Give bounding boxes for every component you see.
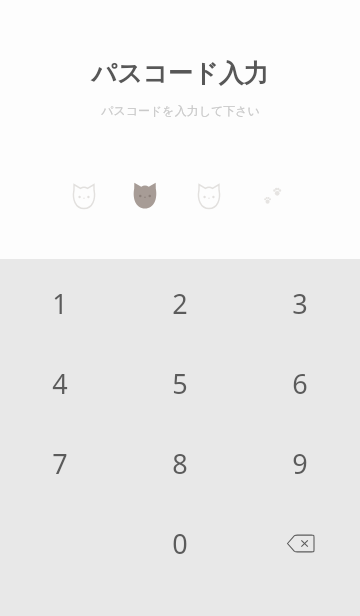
button[interactable]: 0 xyxy=(120,503,240,583)
button[interactable]: 3 xyxy=(240,263,360,343)
staticText: 0 xyxy=(172,525,188,562)
staticText: 5 xyxy=(172,365,188,402)
button[interactable]: 1 xyxy=(0,263,120,343)
button[interactable]: 4 xyxy=(0,343,120,423)
staticText: 3 xyxy=(292,285,308,322)
button[interactable]: 5 xyxy=(120,343,240,423)
button[interactable]: 9 xyxy=(240,423,360,503)
button[interactable]: Backspace xyxy=(240,503,360,583)
button[interactable]: 2 xyxy=(120,263,240,343)
button[interactable]: 7 xyxy=(0,423,120,503)
staticText: 6 xyxy=(292,365,308,402)
staticText: パスコードを入力して下さい xyxy=(101,103,260,118)
staticText: 8 xyxy=(172,445,188,482)
staticText: 2 xyxy=(172,285,188,322)
staticText: 1 xyxy=(52,285,68,322)
staticText: 9 xyxy=(292,445,308,482)
staticText: 7 xyxy=(52,445,68,482)
staticText: 4 xyxy=(52,365,68,402)
button[interactable]: 6 xyxy=(240,343,360,423)
staticText: パスコード入力 xyxy=(91,58,269,89)
button[interactable]: 8 xyxy=(120,423,240,503)
